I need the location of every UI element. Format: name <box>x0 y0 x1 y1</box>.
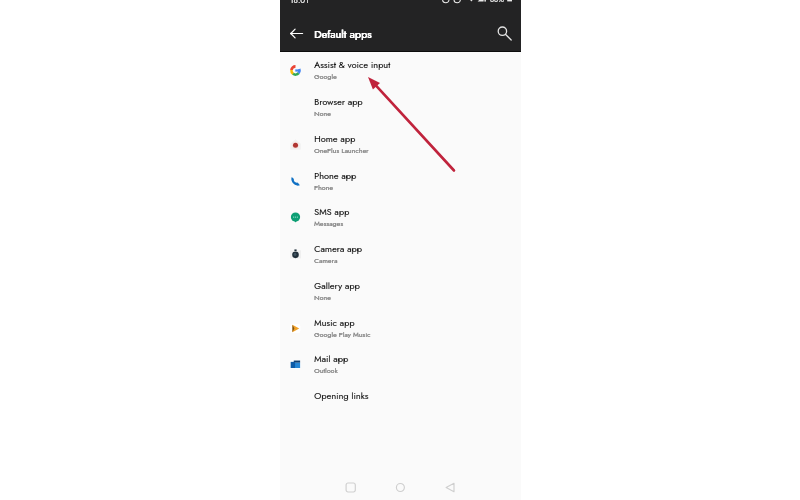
staticText: Opening links <box>314 389 369 402</box>
staticText: Opening links <box>314 389 369 402</box>
staticText: Messages <box>314 218 344 228</box>
staticText: Google <box>314 71 337 81</box>
button[interactable]: Phone app <box>280 163 521 199</box>
staticText: None <box>314 108 331 118</box>
button[interactable]: Search <box>491 20 517 46</box>
staticText: Gallery app <box>314 279 360 292</box>
button[interactable]: Home app <box>280 126 521 163</box>
staticText: Browser app <box>314 95 363 108</box>
staticText: Mail app <box>314 352 349 365</box>
staticText: Assist & voice input <box>314 58 391 71</box>
staticText: Google Play Music <box>314 329 371 339</box>
staticText: 88% <box>490 0 504 5</box>
staticText: Assist & voice input <box>314 58 391 71</box>
button[interactable]: Browser app <box>280 89 521 126</box>
staticText: Camera app <box>314 242 362 255</box>
button[interactable]: Recents <box>336 473 365 500</box>
staticText: Google <box>314 71 337 81</box>
button[interactable]: Opening links <box>280 383 521 420</box>
staticText: OnePlus Launcher <box>314 145 369 155</box>
staticText: Camera <box>314 255 338 265</box>
button[interactable]: Back <box>436 473 465 500</box>
staticText: Google Play Music <box>314 329 371 339</box>
staticText: Default apps <box>314 26 372 42</box>
button[interactable]: Mail app <box>280 346 521 383</box>
staticText: Outlook <box>314 365 338 375</box>
staticText: SMS app <box>314 205 350 218</box>
staticText: None <box>314 108 331 118</box>
staticText: SMS app <box>314 205 350 218</box>
button[interactable]: Gallery app <box>280 273 521 310</box>
button[interactable]: Camera app <box>280 236 521 273</box>
staticText: Music app <box>314 316 355 329</box>
staticText: Messages <box>314 218 344 228</box>
staticText: OnePlus Launcher <box>314 145 369 155</box>
button[interactable]: Music app <box>280 310 521 346</box>
staticText: Home app <box>314 132 356 145</box>
staticText: Music app <box>314 316 355 329</box>
staticText: Home app <box>314 132 356 145</box>
staticText: Gallery app <box>314 279 360 292</box>
staticText: Camera app <box>314 242 362 255</box>
staticText: 18:01 <box>290 0 309 6</box>
staticText: Phone app <box>314 169 357 182</box>
staticText: Phone app <box>314 169 357 182</box>
staticText: Phone <box>314 182 333 192</box>
staticText: Default apps <box>314 26 372 42</box>
button[interactable]: Assist & voice input <box>280 52 521 89</box>
staticText: None <box>314 292 331 302</box>
button[interactable]: Home <box>386 473 415 500</box>
button[interactable]: Back <box>283 20 309 46</box>
staticText: Outlook <box>314 365 338 375</box>
staticText: Camera <box>314 255 338 265</box>
staticText: Browser app <box>314 95 363 108</box>
staticText: Mail app <box>314 352 349 365</box>
button[interactable]: SMS app <box>280 199 521 236</box>
staticText: Phone <box>314 182 333 192</box>
staticText: None <box>314 292 331 302</box>
